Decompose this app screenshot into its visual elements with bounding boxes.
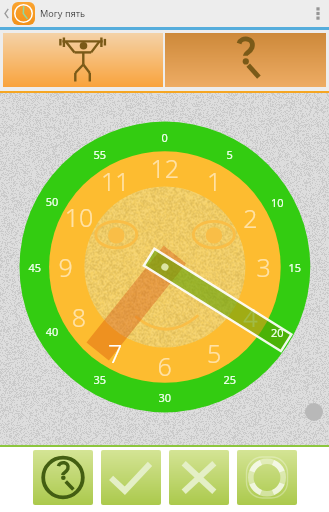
button[interactable]: Navigate up <box>1 0 12 27</box>
button[interactable]: Question tab <box>165 33 326 87</box>
button[interactable]: Hint <box>33 450 93 505</box>
button[interactable]: Cancel <box>169 450 229 505</box>
button[interactable]: Confirm <box>101 450 161 505</box>
staticText: Могу пять <box>40 7 86 20</box>
button[interactable]: Help <box>237 450 297 505</box>
button[interactable]: Clock face <box>0 93 329 445</box>
button[interactable]: More options <box>305 0 329 27</box>
button[interactable]: Exercise tab <box>3 33 163 87</box>
